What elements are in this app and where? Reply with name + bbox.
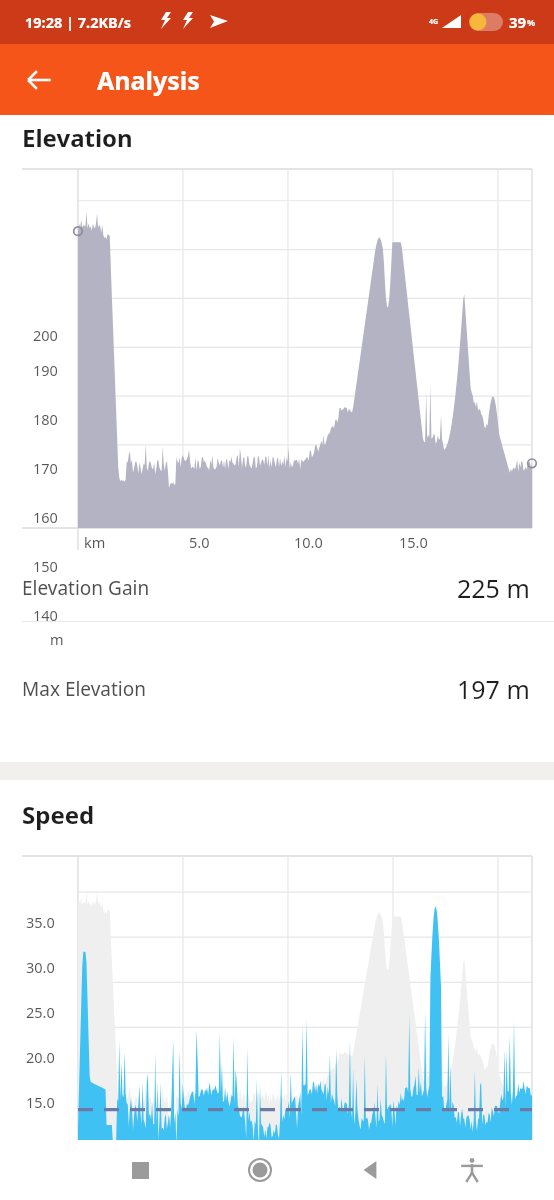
staticText: Max Elevation [22, 676, 146, 702]
button[interactable]: Elevation Gain [0, 555, 554, 620]
staticText: 140 [33, 605, 58, 625]
staticText: 160 [33, 507, 58, 527]
staticText: m [50, 629, 64, 649]
staticText: km [84, 532, 106, 552]
staticText: 15.0 [399, 532, 428, 552]
button[interactable]: Back [342, 1140, 402, 1200]
staticText: 39 [509, 12, 527, 32]
staticText: 25.0 [26, 1002, 55, 1022]
button[interactable]: Accessibility [442, 1140, 502, 1200]
button[interactable]: Home [230, 1140, 290, 1200]
staticText: 19:28 | 7.2KB/s [25, 12, 132, 32]
button[interactable]: Recent apps [110, 1140, 170, 1200]
staticText: 4G [429, 17, 439, 27]
staticText: 180 [33, 409, 58, 429]
staticText: Speed [22, 798, 95, 831]
staticText: 20.0 [26, 1047, 55, 1067]
staticText: 200 [33, 325, 58, 345]
staticText: Analysis [97, 63, 200, 97]
staticText: 197 m [457, 672, 530, 706]
staticText: 35.0 [26, 912, 55, 932]
staticText: 150 [33, 556, 58, 576]
staticText: % [527, 16, 536, 28]
button[interactable]: Back [14, 55, 64, 105]
staticText: Elevation Gain [22, 575, 150, 601]
staticText: Elevation [22, 121, 133, 154]
staticText: 30.0 [26, 957, 55, 977]
staticText: 10.0 [294, 532, 323, 552]
staticText: 170 [33, 458, 58, 478]
button[interactable]: Max Elevation [0, 656, 554, 721]
staticText: 15.0 [26, 1092, 55, 1112]
staticText: 5.0 [189, 532, 210, 552]
staticText: 225 m [457, 571, 530, 605]
staticText: 190 [33, 360, 58, 380]
